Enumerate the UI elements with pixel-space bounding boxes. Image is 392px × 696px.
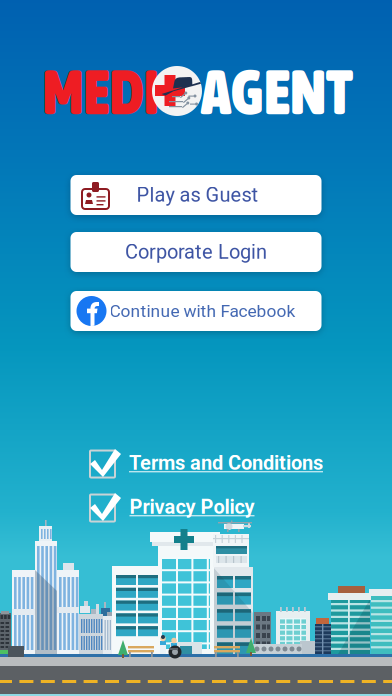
staticText: AGENT [201,57,353,127]
button[interactable]: Corporate Login [70,232,321,272]
button[interactable]: Continue with Facebook [70,291,321,331]
staticText: Terms and Conditions [129,451,323,475]
button[interactable]: Terms and Conditions [89,447,323,479]
button[interactable]: Play as Guest [70,175,321,215]
staticText: Privacy Policy [129,495,254,519]
staticText: Corporate Login [125,240,267,264]
staticText: MEDI [42,57,159,127]
staticText: Continue with Facebook [109,301,295,321]
staticText: Play as Guest [136,183,258,207]
button[interactable]: Privacy Policy [89,491,323,523]
